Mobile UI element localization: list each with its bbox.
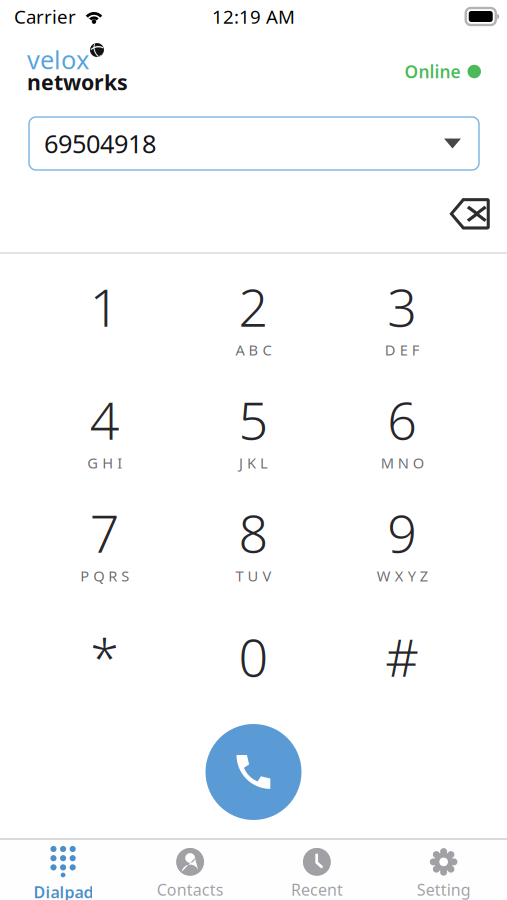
button[interactable]: Dialpad	[0, 839, 127, 900]
staticText: Contacts	[157, 879, 224, 900]
staticText: Setting	[417, 879, 471, 900]
staticText: 9	[387, 498, 417, 567]
button[interactable]: 8	[179, 498, 328, 611]
button[interactable]: 0	[179, 622, 328, 735]
button[interactable]: 7	[30, 498, 179, 611]
button[interactable]: Setting	[380, 839, 507, 900]
staticText: networks	[27, 68, 128, 96]
staticText: G H I	[87, 453, 122, 472]
staticText: 1	[90, 272, 120, 341]
button[interactable]: *	[30, 622, 179, 735]
staticText: 4	[90, 385, 120, 454]
staticText: *	[90, 622, 119, 691]
button[interactable]: 3	[328, 272, 476, 385]
staticText: W X Y Z	[377, 566, 428, 585]
button[interactable]: 5	[179, 385, 328, 498]
button[interactable]: 2	[179, 272, 328, 385]
button[interactable]: Contacts	[127, 839, 254, 900]
button[interactable]: 4	[30, 385, 179, 498]
button[interactable]: Recent	[253, 839, 380, 900]
staticText: 7	[90, 498, 120, 567]
staticText: Carrier	[14, 4, 76, 29]
staticText: Dialpad	[33, 881, 93, 900]
button[interactable]: Delete	[440, 186, 494, 235]
staticText: D E F	[385, 340, 420, 359]
button[interactable]: #	[328, 622, 476, 735]
staticText: M N O	[381, 453, 424, 472]
staticText: 69504918	[44, 127, 156, 160]
staticText: 6	[387, 385, 417, 454]
staticText: 2	[238, 272, 268, 341]
staticText: Online	[404, 60, 460, 83]
button[interactable]: 1	[30, 272, 179, 385]
staticText: A B C	[235, 340, 271, 359]
staticText: J K L	[239, 453, 268, 472]
staticText: 12:19 AM	[212, 4, 295, 29]
staticText: #	[385, 622, 419, 691]
staticText: 3	[387, 272, 417, 341]
staticText: 8	[238, 498, 268, 567]
button[interactable]: 6	[328, 385, 476, 498]
button[interactable]: Call	[205, 724, 301, 820]
staticText: Recent	[291, 879, 343, 900]
staticText: T U V	[235, 566, 271, 585]
staticText: velox	[27, 43, 89, 76]
staticText: P Q R S	[80, 566, 129, 585]
button[interactable]: 9	[328, 498, 476, 611]
staticText: 0	[238, 622, 268, 691]
staticText: 5	[238, 385, 268, 454]
